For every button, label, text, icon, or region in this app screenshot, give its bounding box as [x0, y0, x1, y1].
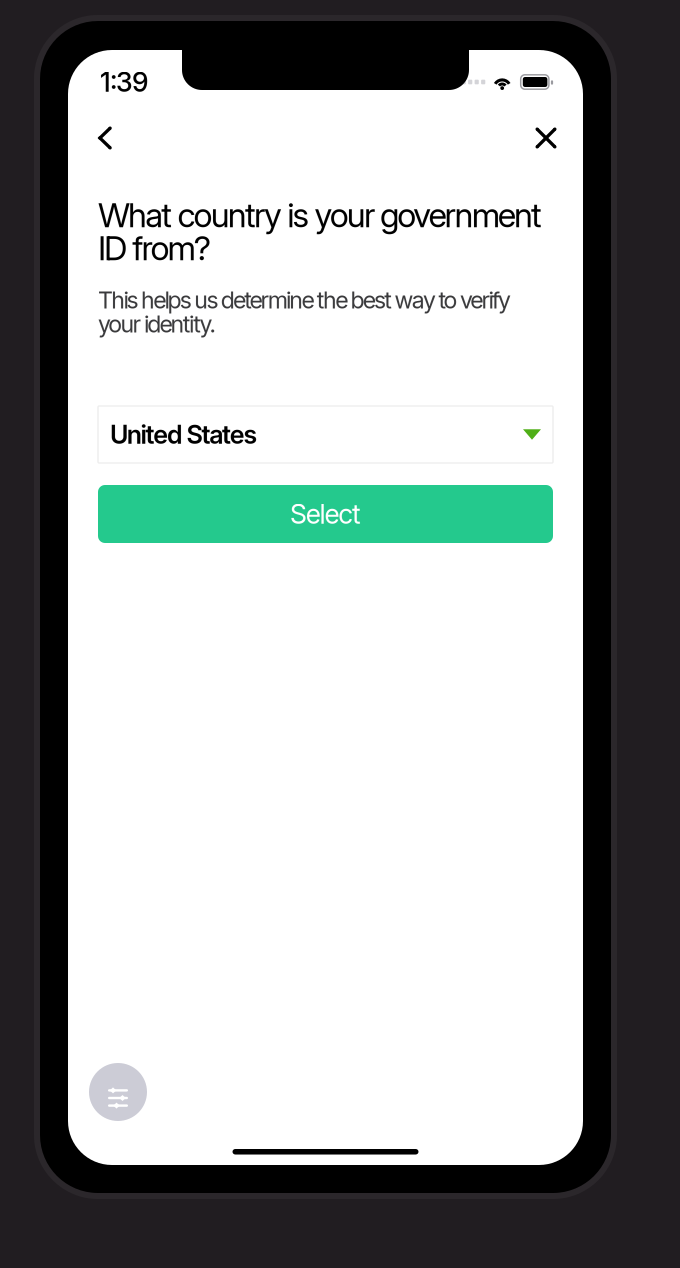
button[interactable]: Back: [85, 116, 125, 160]
staticText: 1:39: [100, 66, 148, 98]
staticText: United States: [110, 419, 258, 450]
staticText: ID from?: [98, 228, 211, 268]
button[interactable]: Filters: [89, 1063, 147, 1121]
button[interactable]: Select: [98, 485, 553, 543]
button[interactable]: Close: [526, 116, 566, 160]
staticText: your identity.: [98, 310, 216, 338]
staticText: What country is your government: [98, 195, 542, 235]
staticText: This helps us determine the best way to …: [98, 286, 511, 314]
button[interactable]: United States: [98, 406, 553, 463]
staticText: Select: [290, 498, 361, 530]
